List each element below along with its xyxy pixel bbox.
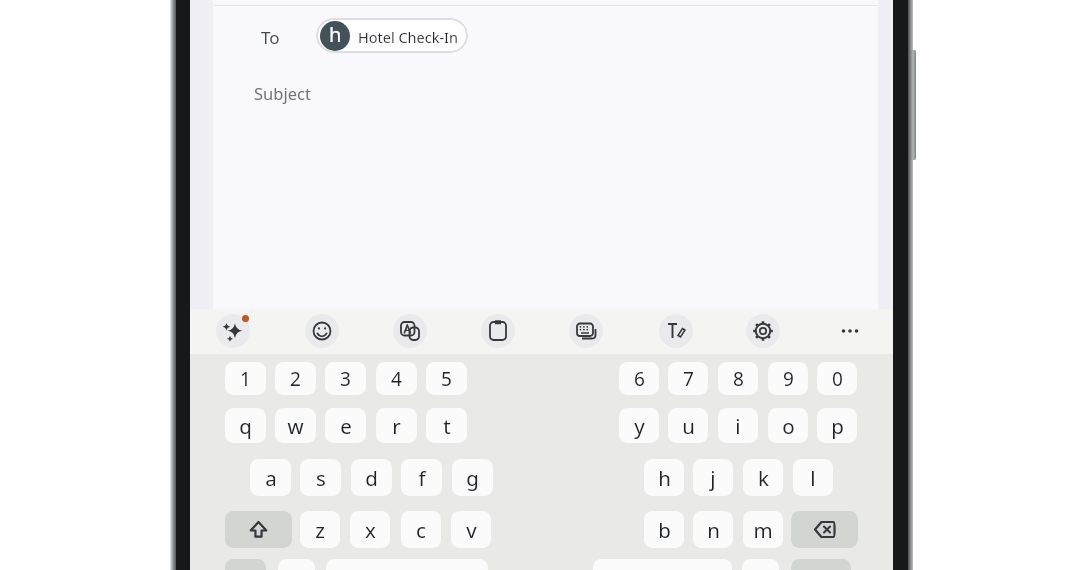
staticText: 0	[832, 366, 843, 392]
staticText: m	[753, 516, 773, 544]
staticText: e	[340, 412, 352, 440]
button[interactable]: u	[668, 408, 708, 443]
button[interactable]: v	[451, 511, 491, 548]
staticText: l	[810, 464, 816, 492]
staticText: u	[682, 412, 695, 440]
staticText: To	[261, 26, 280, 49]
staticText: t	[443, 412, 451, 440]
staticText: v	[466, 516, 477, 544]
button[interactable]: 9	[768, 362, 808, 395]
staticText: 4	[391, 366, 402, 392]
staticText: z	[315, 516, 325, 544]
button[interactable]: 2	[275, 362, 316, 395]
staticText: g	[466, 464, 479, 492]
button[interactable]: 8	[718, 362, 758, 395]
staticText: x	[365, 516, 376, 544]
button[interactable]	[659, 314, 693, 348]
staticText: i	[735, 412, 741, 440]
button[interactable]	[833, 314, 867, 348]
button[interactable]: l	[793, 459, 833, 496]
staticText: 6	[634, 366, 645, 392]
staticText: 5	[441, 366, 452, 392]
button[interactable]: e	[325, 408, 366, 443]
button[interactable]: 0	[817, 362, 857, 395]
staticText: Subject	[254, 82, 311, 104]
button[interactable]	[225, 511, 292, 548]
button[interactable]: b	[644, 511, 684, 548]
button[interactable]: a	[250, 459, 291, 496]
staticText: 8	[733, 366, 744, 392]
button[interactable]	[305, 314, 339, 348]
staticText: o	[782, 412, 795, 440]
button[interactable]: f	[401, 459, 442, 496]
button[interactable]: y	[619, 408, 659, 443]
button[interactable]: i	[718, 408, 758, 443]
staticText: k	[758, 464, 769, 492]
button[interactable]	[746, 314, 780, 348]
button[interactable]: g	[452, 459, 493, 496]
staticText: a	[265, 464, 277, 492]
staticText: h	[658, 464, 671, 492]
staticText: j	[710, 464, 716, 492]
staticText: 1	[240, 366, 251, 392]
button[interactable]: t	[426, 408, 467, 443]
button[interactable]	[569, 314, 603, 348]
staticText: 2	[290, 366, 301, 392]
button[interactable]: x	[350, 511, 390, 548]
button[interactable]: p	[817, 408, 857, 443]
button[interactable]: 5	[426, 362, 467, 395]
staticText: p	[831, 412, 844, 440]
staticText: c	[416, 516, 426, 544]
button[interactable]	[742, 559, 779, 570]
button[interactable]: d	[351, 459, 392, 496]
staticText: d	[365, 464, 378, 492]
button[interactable]: k	[743, 459, 783, 496]
staticText: 7	[683, 366, 694, 392]
button[interactable]: 6	[619, 362, 659, 395]
staticText: r	[392, 412, 401, 440]
button[interactable]	[225, 559, 266, 570]
staticText: s	[316, 464, 326, 492]
staticText: 3	[340, 366, 351, 392]
staticText: Hotel Check-In	[358, 27, 458, 47]
staticText: 9	[783, 366, 794, 392]
staticText: f	[418, 464, 426, 492]
staticText: n	[707, 516, 720, 544]
button[interactable]: z	[300, 511, 340, 548]
button[interactable]: h	[644, 459, 684, 496]
staticText: h	[329, 21, 342, 48]
button[interactable]: 3	[325, 362, 366, 395]
button[interactable]: s	[300, 459, 341, 496]
button[interactable]: c	[401, 511, 441, 548]
staticText: b	[658, 516, 671, 544]
staticText: w	[287, 412, 304, 440]
staticText: q	[239, 412, 252, 440]
button[interactable]: r	[376, 408, 417, 443]
button[interactable]	[481, 314, 515, 348]
button[interactable]	[393, 314, 427, 348]
button[interactable]: 1	[225, 362, 266, 395]
staticText: y	[634, 412, 645, 440]
button[interactable]: m	[743, 511, 783, 548]
button[interactable]	[278, 559, 315, 570]
button[interactable]: o	[768, 408, 808, 443]
button[interactable]	[791, 559, 851, 570]
button[interactable]	[791, 511, 858, 548]
button[interactable]: h	[316, 18, 468, 53]
button[interactable]: n	[693, 511, 733, 548]
button[interactable]: 7	[668, 362, 708, 395]
button[interactable]: w	[275, 408, 316, 443]
button[interactable]: 4	[376, 362, 417, 395]
button[interactable]	[216, 314, 250, 348]
button[interactable]: j	[693, 459, 733, 496]
button[interactable]: q	[225, 408, 266, 443]
